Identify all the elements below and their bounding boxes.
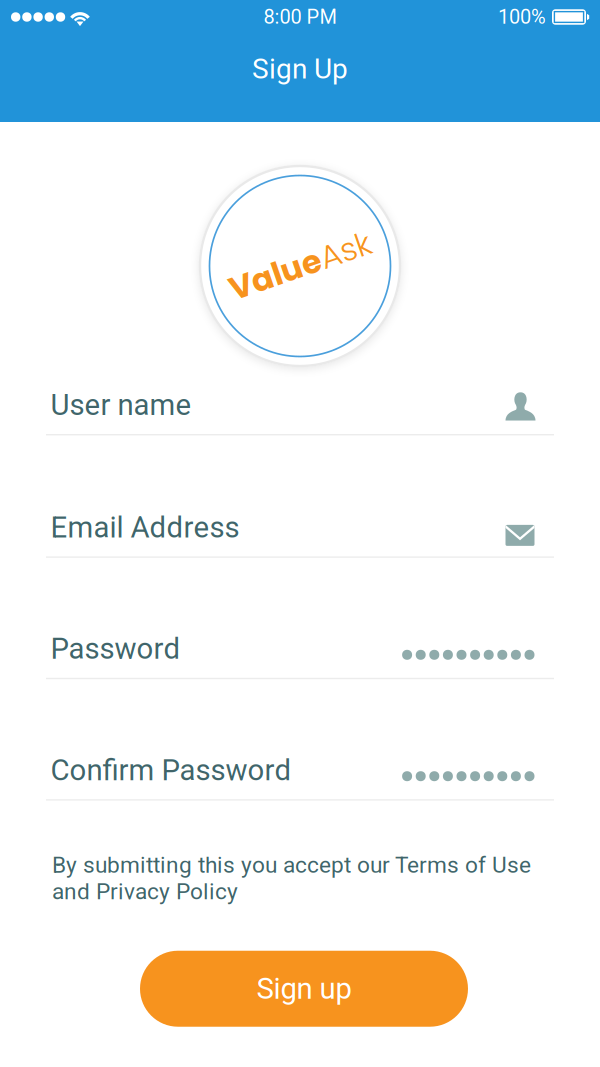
staticText: User name bbox=[50, 388, 191, 422]
button[interactable]: Password bbox=[46, 632, 554, 679]
staticText: By submitting this you accept our Terms … bbox=[52, 852, 531, 905]
staticText: 100% bbox=[498, 5, 546, 29]
staticText: 8:00 PM bbox=[263, 5, 336, 29]
button[interactable]: Email Address bbox=[46, 510, 554, 558]
staticText: Value bbox=[226, 244, 322, 288]
button[interactable]: User name bbox=[46, 388, 554, 435]
button[interactable]: Confirm Password bbox=[46, 753, 554, 801]
staticText: Sign up bbox=[256, 971, 351, 1006]
staticText: Confirm Password bbox=[50, 753, 291, 787]
staticText: Ask bbox=[322, 244, 374, 288]
staticText: Email Address bbox=[50, 510, 239, 545]
staticText: Sign Up bbox=[252, 53, 348, 85]
button[interactable]: Sign up bbox=[140, 951, 468, 1027]
staticText: Password bbox=[50, 632, 180, 666]
